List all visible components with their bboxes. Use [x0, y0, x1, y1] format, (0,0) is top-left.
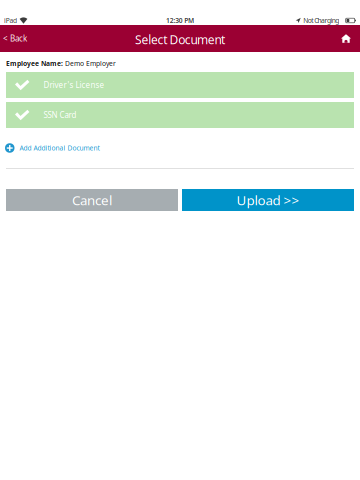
staticText: Upload >>	[236, 191, 299, 209]
staticText: Employee Name:	[6, 59, 63, 68]
staticText: iPad	[4, 16, 17, 25]
staticText: Not Charging	[303, 16, 339, 25]
staticText: Select Document	[135, 31, 225, 47]
button[interactable]: Upload >>	[182, 189, 354, 211]
staticText: Demo Employer	[63, 59, 116, 68]
staticText: Add Additional Document	[19, 144, 99, 152]
button[interactable]: < Back	[0, 25, 35, 52]
button[interactable]: Add Additional Document	[0, 141, 360, 155]
staticText: Driver's License	[43, 80, 104, 90]
button[interactable]: Home	[333, 25, 360, 52]
button[interactable]: Cancel	[6, 189, 178, 211]
staticText: < Back	[3, 33, 27, 44]
staticText: Cancel	[72, 191, 112, 209]
button[interactable]: Driver's License	[6, 72, 354, 98]
staticText: 12:30 PM	[166, 16, 194, 25]
staticText: SSN Card	[43, 110, 76, 120]
button[interactable]: SSN Card	[6, 102, 354, 128]
